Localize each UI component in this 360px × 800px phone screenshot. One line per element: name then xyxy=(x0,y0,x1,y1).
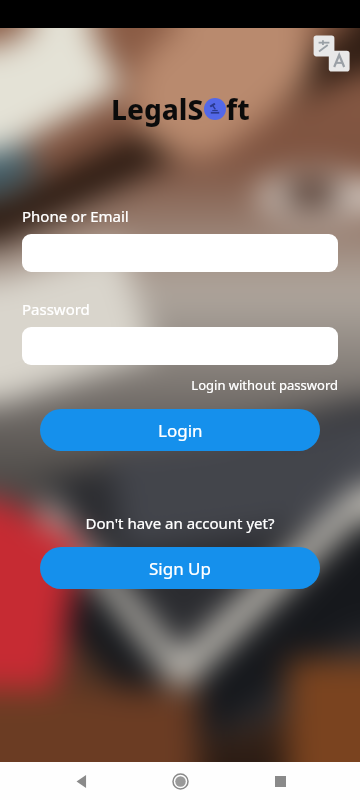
button[interactable] xyxy=(22,234,338,272)
button[interactable]: Translate xyxy=(312,34,352,74)
staticText: Sign Up xyxy=(149,557,211,580)
staticText: Login xyxy=(158,419,203,442)
staticText: ft xyxy=(226,90,250,128)
button[interactable]: Recent apps xyxy=(261,762,299,800)
staticText: Phone or Email xyxy=(22,206,129,226)
staticText: LegalS xyxy=(111,90,204,128)
button[interactable]: Back xyxy=(62,762,100,800)
button[interactable]: Login xyxy=(40,409,320,451)
button[interactable]: Sign Up xyxy=(40,547,320,589)
button[interactable]: Login without password xyxy=(0,376,338,394)
staticText: Don't have an account yet? xyxy=(0,513,360,533)
staticText: Password xyxy=(22,299,90,319)
button[interactable] xyxy=(22,327,338,365)
button[interactable]: Home xyxy=(161,762,199,800)
